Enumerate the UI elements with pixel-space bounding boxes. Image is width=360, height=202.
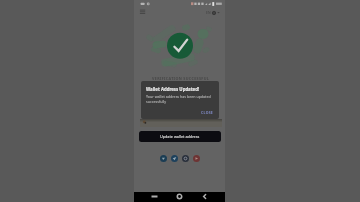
button[interactable]: Change language [206, 10, 220, 15]
staticText: CLOSE [201, 110, 214, 115]
button[interactable]: Telegram [171, 155, 178, 162]
button[interactable]: CLOSE [201, 110, 214, 115]
button[interactable]: Twitter [160, 155, 167, 162]
button[interactable]: Back [201, 193, 208, 200]
button[interactable]: Recents [151, 193, 158, 200]
button[interactable]: Wallet address field [140, 119, 222, 127]
staticText: Update wallet address [160, 134, 200, 139]
staticText: Wallet Address Updated! [146, 86, 200, 92]
button[interactable]: Update wallet address [139, 131, 221, 142]
staticText: VERIFICATION SUCCESSFUL [152, 76, 210, 81]
button[interactable]: Discord [182, 155, 189, 162]
button[interactable]: Home [176, 193, 183, 200]
staticText: Your wallet address has been updated suc… [146, 94, 215, 104]
button[interactable]: Open navigation menu [138, 8, 147, 17]
staticText: EN [206, 10, 211, 15]
button[interactable]: YouTube [193, 155, 200, 162]
